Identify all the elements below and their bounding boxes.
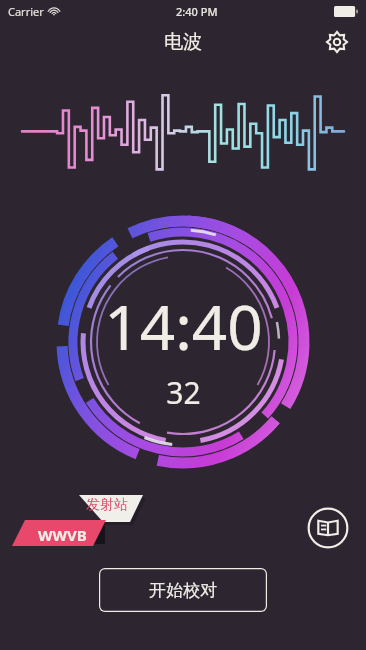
- staticText: Carrier: [8, 4, 44, 19]
- staticText: 32: [166, 372, 201, 413]
- button[interactable]: Settings: [320, 25, 354, 59]
- button[interactable]: [0, 492, 366, 562]
- staticText: 电波: [164, 30, 202, 54]
- staticText: 发射站: [86, 496, 128, 514]
- staticText: WWVB: [38, 525, 87, 545]
- staticText: 14:40: [104, 284, 263, 368]
- button[interactable]: Help: [304, 504, 352, 552]
- staticText: 2:40 PM: [176, 4, 218, 19]
- staticText: 开始校对: [149, 580, 217, 601]
- button[interactable]: 开始校对: [99, 568, 267, 612]
